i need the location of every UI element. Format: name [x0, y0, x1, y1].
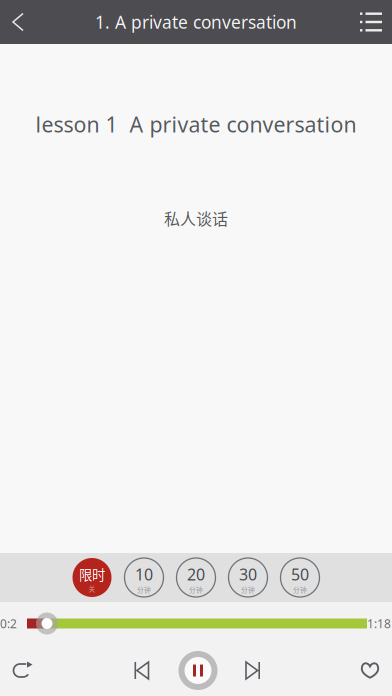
staticText: 1. A private conversation: [95, 10, 297, 33]
staticText: 20: [187, 563, 205, 585]
button[interactable]: 10: [124, 554, 163, 600]
button[interactable]: Next track: [229, 645, 277, 696]
staticText: 分钟: [241, 585, 255, 594]
staticText: lesson 1 A private conversation: [35, 110, 356, 138]
button[interactable]: Pause: [167, 645, 229, 696]
staticText: 分钟: [137, 585, 151, 594]
button[interactable]: Repeat: [0, 645, 45, 696]
staticText: 分钟: [189, 585, 203, 594]
staticText: 分钟: [293, 585, 307, 594]
button[interactable]: Favourite: [348, 645, 392, 696]
staticText: 私人谈话: [164, 206, 228, 229]
staticText: 1:18: [367, 615, 391, 631]
button[interactable]: Previous track: [116, 645, 167, 696]
button[interactable]: 限时: [72, 554, 111, 600]
staticText: 10: [135, 563, 153, 585]
button[interactable]: Back: [0, 0, 50, 44]
button[interactable]: 30: [228, 554, 267, 600]
staticText: 关: [88, 584, 95, 593]
staticText: 限时: [79, 564, 105, 584]
button[interactable]: 50: [280, 554, 319, 600]
button[interactable]: 20: [176, 554, 215, 600]
staticText: 30: [239, 563, 257, 585]
staticText: 0:2: [0, 615, 17, 631]
staticText: 50: [291, 563, 309, 585]
button[interactable]: Table of contents: [342, 0, 392, 44]
